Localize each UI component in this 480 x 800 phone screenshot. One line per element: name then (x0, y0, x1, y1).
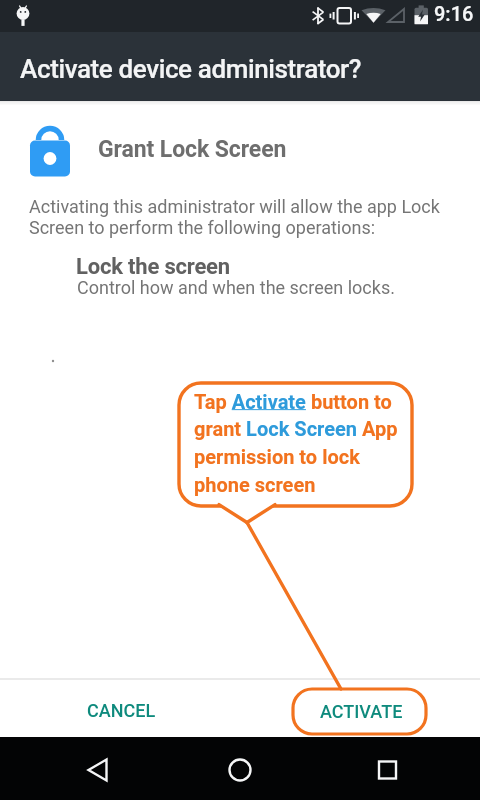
staticText: 9:16 (434, 2, 474, 25)
staticText: Control how and when the screen locks. (77, 277, 395, 298)
staticText: Activate device administrator? (20, 54, 362, 84)
button[interactable]: ACTIVATE (293, 687, 426, 735)
button[interactable]: CANCEL (64, 683, 176, 737)
staticText: Lock the screen (76, 254, 230, 280)
staticText: Tap Activate button to grant Lock Screen… (194, 390, 398, 497)
staticText: ACTIVATE (320, 701, 403, 722)
button[interactable] (71, 744, 123, 796)
staticText: CANCEL (87, 700, 156, 721)
button[interactable] (361, 744, 413, 796)
staticText: Grant Lock Screen (98, 136, 287, 163)
staticText: Activating this administrator will allow… (29, 196, 440, 239)
button[interactable] (214, 744, 266, 796)
